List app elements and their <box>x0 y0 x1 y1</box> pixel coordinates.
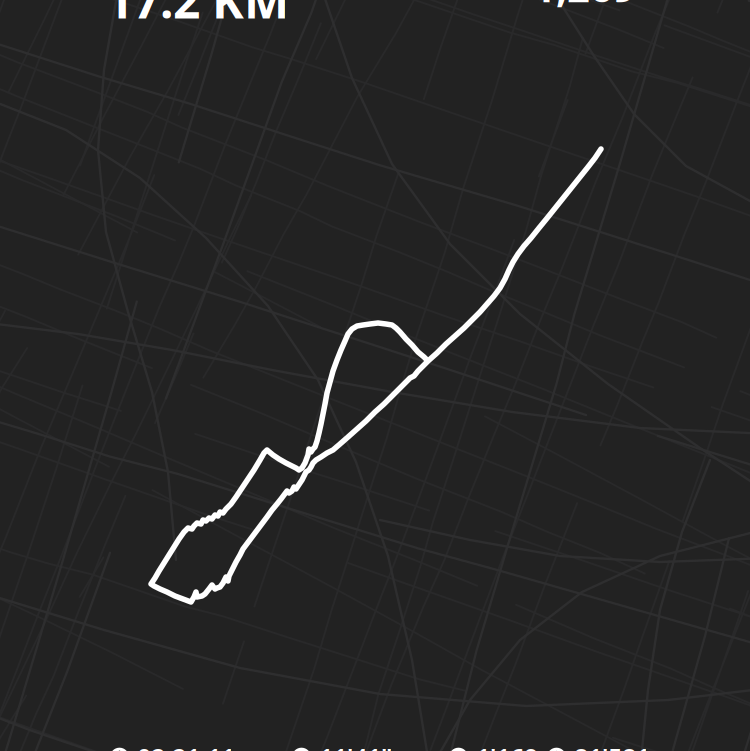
staticText: 02:21:11 <box>137 740 235 751</box>
staticText: 1,269 <box>533 0 636 13</box>
staticText: 1'169 <box>476 740 538 751</box>
staticText: 17.2 KM <box>106 0 289 32</box>
staticText: 11'41" <box>319 740 392 751</box>
staticText: 81'581 <box>574 740 650 751</box>
